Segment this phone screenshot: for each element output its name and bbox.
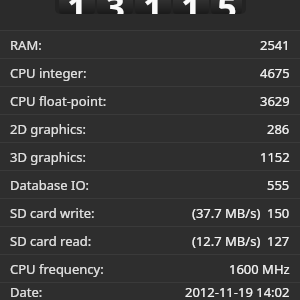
- button[interactable]: RAM:: [0, 31, 300, 58]
- staticText: Database IO:: [10, 176, 90, 194]
- staticText: 1152: [260, 148, 290, 166]
- button[interactable]: CPU float-point:: [0, 87, 300, 114]
- staticText: SD card write:: [10, 204, 95, 222]
- button[interactable]: SD card read:: [0, 227, 300, 254]
- staticText: 1: [181, 0, 201, 14]
- staticText: 1: [67, 0, 87, 14]
- staticText: 2D graphics:: [10, 120, 87, 138]
- staticText: CPU float-point:: [10, 92, 107, 110]
- staticText: 4675: [260, 64, 290, 82]
- button[interactable]: Total benchmark score 13115: [55, 0, 246, 14]
- staticText: (37.7 MB/s): [192, 204, 261, 222]
- staticText: 3D graphics:: [10, 148, 87, 166]
- button[interactable]: 2D graphics:: [0, 115, 300, 142]
- button[interactable]: CPU frequency:: [0, 255, 300, 282]
- staticText: 3629: [260, 92, 290, 110]
- staticText: 555: [267, 176, 290, 194]
- staticText: CPU frequency:: [10, 260, 104, 278]
- staticText: 150: [267, 204, 290, 222]
- button[interactable]: CPU integer:: [0, 59, 300, 86]
- staticText: 286: [267, 120, 290, 138]
- staticText: 3: [105, 0, 125, 14]
- staticText: SD card read:: [10, 232, 92, 250]
- button[interactable]: 3D graphics:: [0, 143, 300, 170]
- staticText: 5: [217, 0, 237, 14]
- staticText: Date:: [10, 283, 43, 300]
- staticText: 1: [143, 0, 163, 14]
- staticText: (12.7 MB/s): [192, 232, 261, 250]
- staticText: 127: [267, 232, 290, 250]
- staticText: RAM:: [10, 36, 42, 54]
- button[interactable]: SD card write:: [0, 199, 300, 226]
- staticText: 1600 MHz: [229, 260, 290, 278]
- staticText: CPU integer:: [10, 64, 87, 82]
- staticText: 2541: [260, 36, 290, 54]
- button[interactable]: Date:: [0, 283, 300, 300]
- staticText: 2012-11-19 14:02: [185, 283, 290, 300]
- button[interactable]: Database IO:: [0, 171, 300, 198]
